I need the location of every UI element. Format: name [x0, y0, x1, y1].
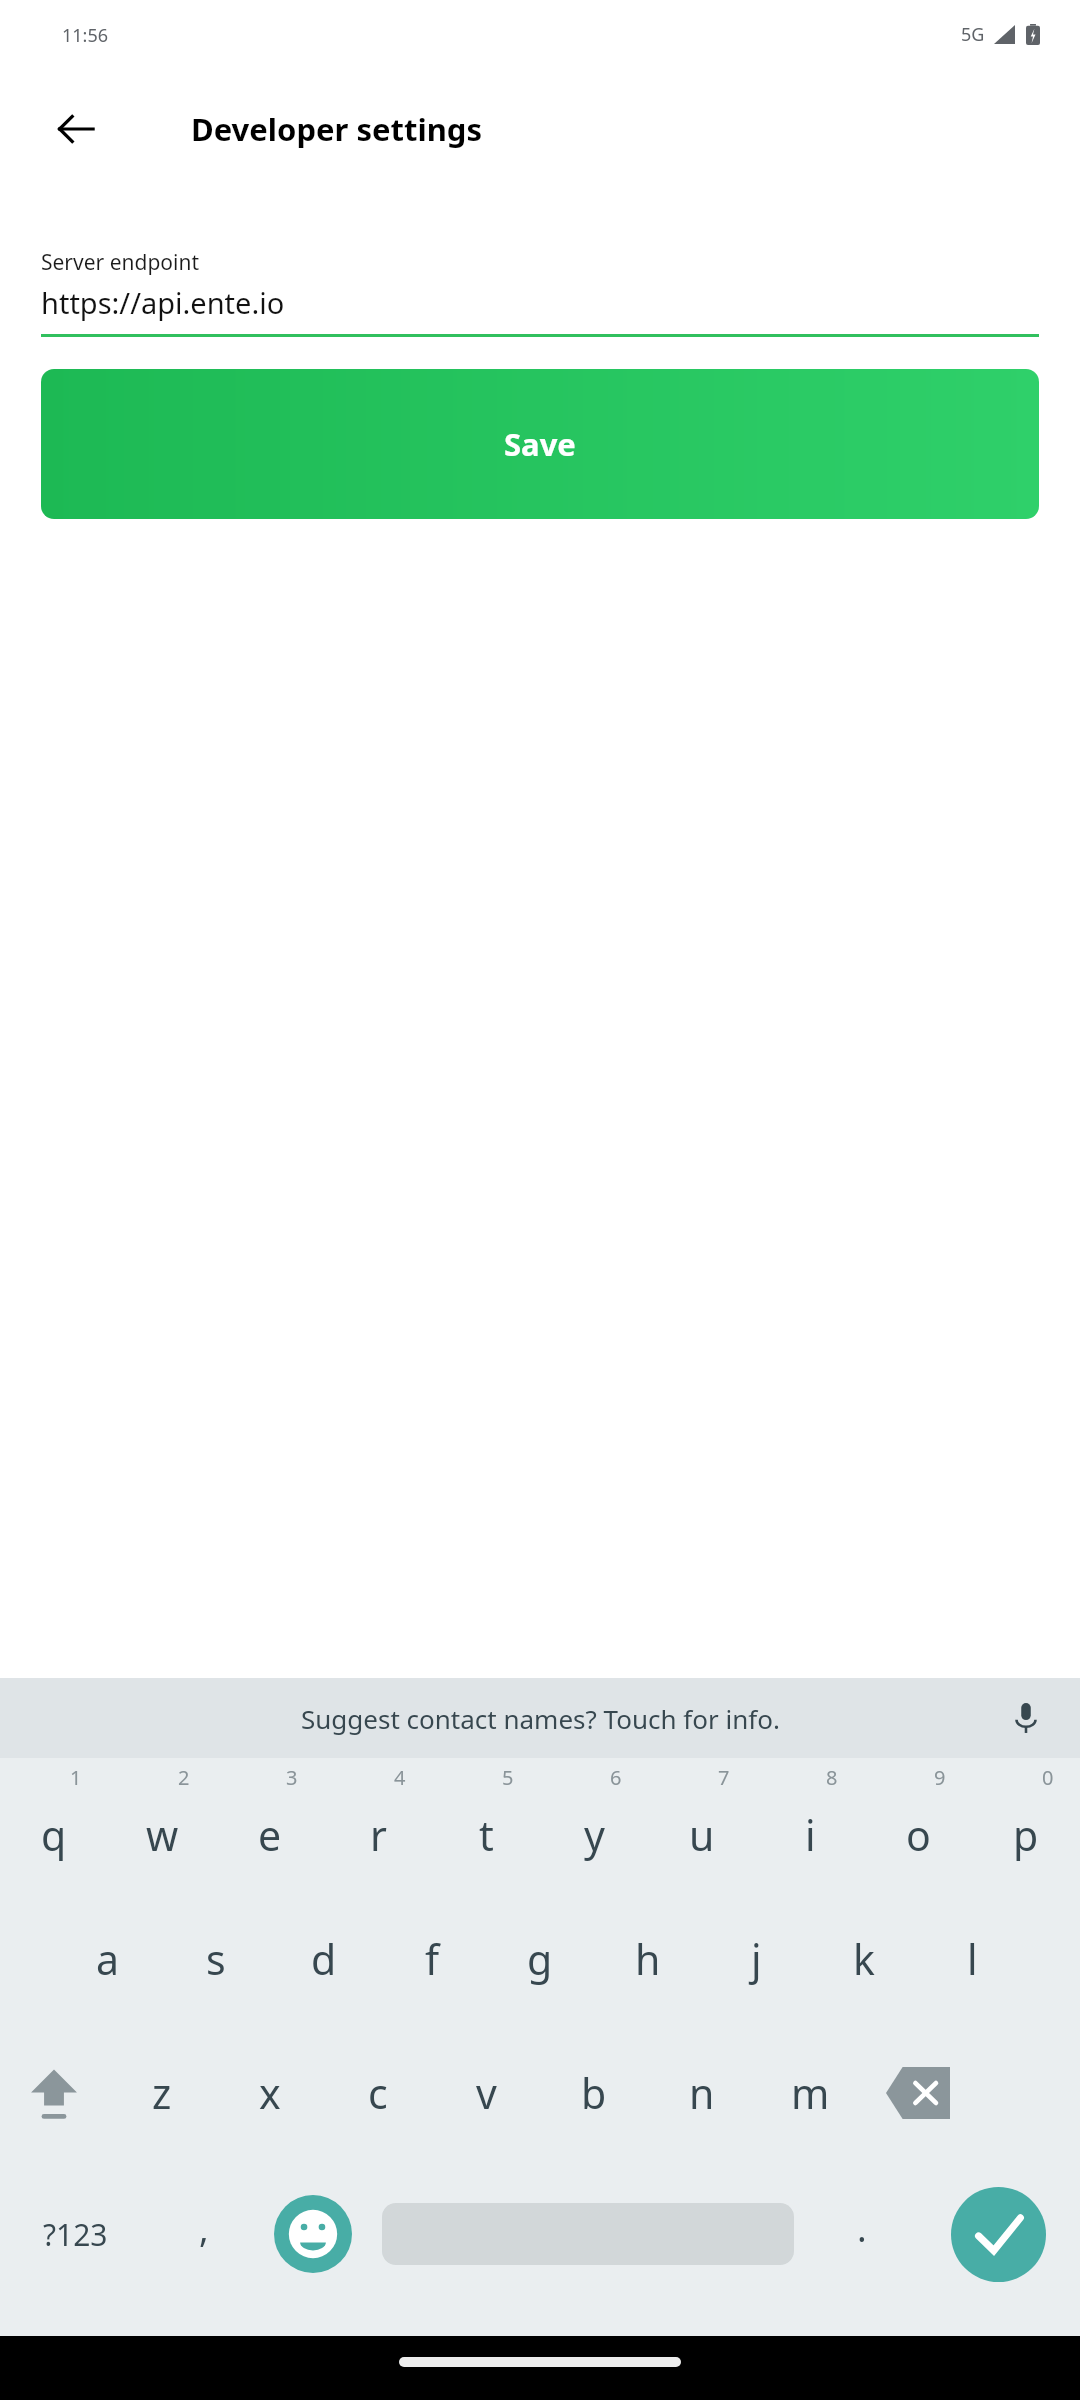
button[interactable]: Done — [916, 2160, 1080, 2308]
staticText: d — [311, 1931, 337, 1987]
staticText: . — [857, 2204, 867, 2253]
button[interactable]: z — [108, 2026, 216, 2160]
staticText: g — [527, 1931, 553, 1987]
staticText: Developer settings — [191, 108, 482, 150]
button[interactable]: 4 — [324, 1758, 432, 1892]
button[interactable]: d — [270, 1892, 378, 2026]
staticText: p — [1013, 1807, 1039, 1863]
button[interactable]: 9 — [864, 1758, 972, 1892]
staticText: Suggest contact names? Touch for info. — [301, 1701, 780, 1736]
staticText: x — [259, 2065, 281, 2121]
button[interactable]: Shift — [0, 2026, 108, 2160]
staticText: 4 — [394, 1764, 406, 1791]
button[interactable]: Back — [40, 93, 112, 165]
staticText: 8 — [826, 1764, 838, 1791]
staticText: k — [853, 1931, 875, 1987]
button[interactable]: , — [150, 2160, 258, 2308]
staticText: z — [152, 2065, 172, 2121]
button[interactable]: 8 — [756, 1758, 864, 1892]
staticText: o — [906, 1807, 931, 1863]
staticText: f — [425, 1931, 440, 1987]
button[interactable]: l — [918, 1892, 1026, 2026]
staticText: , — [199, 2204, 209, 2253]
staticText: r — [370, 1807, 387, 1863]
staticText: 5 — [502, 1764, 514, 1791]
staticText: https://api.ente.io — [41, 283, 285, 322]
button[interactable]: a — [54, 1892, 162, 2026]
button[interactable]: c — [324, 2026, 432, 2160]
button[interactable]: h — [594, 1892, 702, 2026]
staticText: t — [479, 1807, 494, 1863]
button[interactable]: s — [162, 1892, 270, 2026]
staticText: b — [581, 2065, 607, 2121]
staticText: q — [41, 1807, 67, 1863]
button[interactable]: g — [486, 1892, 594, 2026]
button[interactable]: 3 — [216, 1758, 324, 1892]
button[interactable]: n — [648, 2026, 756, 2160]
button[interactable]: b — [540, 2026, 648, 2160]
button[interactable]: 1 — [0, 1758, 108, 1892]
staticText: 9 — [934, 1764, 946, 1791]
staticText: l — [967, 1931, 978, 1987]
staticText: i — [805, 1807, 816, 1863]
staticText: n — [689, 2065, 715, 2121]
staticText: 0 — [1042, 1764, 1054, 1791]
staticText: s — [206, 1931, 226, 1987]
button[interactable]: 0 — [972, 1758, 1080, 1892]
button[interactable]: f — [378, 1892, 486, 2026]
staticText: h — [635, 1931, 661, 1987]
staticText: ?123 — [43, 2214, 108, 2255]
staticText: 5G — [961, 22, 985, 47]
staticText: Save — [504, 423, 576, 465]
staticText: 7 — [718, 1764, 730, 1791]
button[interactable]: k — [810, 1892, 918, 2026]
button[interactable]: Emoji — [258, 2160, 368, 2308]
staticText: a — [96, 1931, 120, 1987]
staticText: u — [689, 1807, 715, 1863]
button[interactable]: j — [702, 1892, 810, 2026]
staticText: v — [476, 2065, 497, 2121]
button[interactable]: v — [432, 2026, 540, 2160]
button[interactable]: . — [808, 2160, 916, 2308]
button[interactable]: Backspace — [864, 2026, 972, 2160]
button[interactable]: Save — [41, 369, 1039, 519]
button[interactable]: 6 — [540, 1758, 648, 1892]
button[interactable]: m — [756, 2026, 864, 2160]
button[interactable]: 5 — [432, 1758, 540, 1892]
staticText: y — [584, 1807, 605, 1863]
button[interactable]: ?123 — [0, 2160, 150, 2308]
staticText: 3 — [286, 1764, 298, 1791]
staticText: j — [751, 1931, 762, 1987]
staticText: 1 — [70, 1764, 82, 1791]
staticText: e — [258, 1807, 282, 1863]
button[interactable]: 2 — [108, 1758, 216, 1892]
staticText: m — [791, 2065, 830, 2121]
staticText: 11:56 — [62, 23, 109, 48]
staticText: w — [146, 1807, 179, 1863]
staticText: 6 — [610, 1764, 622, 1791]
staticText: c — [368, 2065, 388, 2121]
button[interactable]: Suggest contact names? Touch for info. — [0, 1678, 1080, 1758]
staticText: Server endpoint — [41, 248, 200, 277]
button[interactable]: Voice input — [990, 1682, 1062, 1754]
button[interactable]: 7 — [648, 1758, 756, 1892]
staticText: 2 — [178, 1764, 190, 1791]
button[interactable]: x — [216, 2026, 324, 2160]
